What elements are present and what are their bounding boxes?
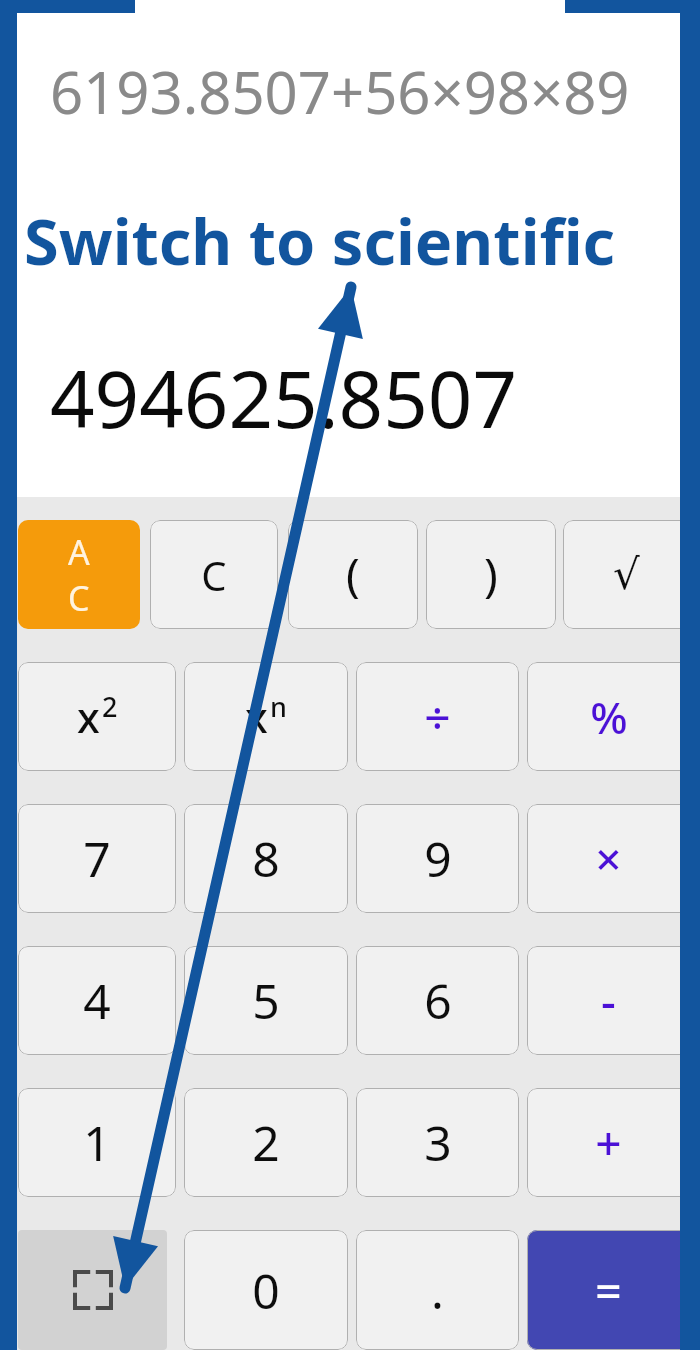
button[interactable]: ×	[527, 804, 690, 913]
staticText: 494625.8507	[50, 345, 518, 451]
button[interactable]: All clear	[18, 520, 140, 629]
staticText: =	[595, 1259, 622, 1322]
button[interactable]: x squared	[18, 662, 176, 771]
button[interactable]: C	[150, 520, 278, 629]
button[interactable]: 7	[18, 804, 176, 913]
button[interactable]: .	[356, 1230, 519, 1350]
button[interactable]: 3	[356, 1088, 519, 1197]
button[interactable]: )	[426, 520, 556, 629]
staticText: 6	[424, 968, 452, 1033]
staticText: C	[68, 575, 90, 621]
staticText: 4	[83, 968, 111, 1033]
button[interactable]: 8	[184, 804, 348, 913]
staticText: 3	[424, 1110, 452, 1175]
staticText: √	[613, 550, 640, 599]
staticText: 9	[424, 826, 452, 891]
button[interactable]: 1	[18, 1088, 176, 1197]
staticText: 8	[252, 826, 280, 891]
staticText: %	[590, 687, 628, 747]
button[interactable]: %	[527, 662, 690, 771]
staticText: 7	[83, 826, 111, 891]
button[interactable]: 4	[18, 946, 176, 1055]
button[interactable]: 0	[184, 1230, 348, 1350]
staticText: ×	[595, 827, 622, 890]
staticText: 6193.8507+56×98×89	[50, 52, 630, 131]
staticText: 5	[252, 968, 280, 1033]
staticText: A	[68, 529, 90, 575]
staticText: -	[601, 969, 616, 1032]
button[interactable]: 9	[356, 804, 519, 913]
button[interactable]: 5	[184, 946, 348, 1055]
staticText: 2	[102, 688, 118, 725]
staticText: Switch to scientific	[24, 198, 616, 284]
staticText: 2	[252, 1110, 280, 1175]
button[interactable]: (	[288, 520, 418, 629]
staticText: +	[595, 1111, 622, 1174]
staticText: x	[245, 688, 268, 745]
staticText: x	[77, 688, 100, 745]
staticText: 0	[252, 1258, 280, 1323]
button[interactable]: 6	[356, 946, 519, 1055]
button[interactable]: Expand display	[18, 1230, 167, 1350]
staticText: 1	[83, 1110, 111, 1175]
staticText: )	[484, 543, 498, 606]
button[interactable]: 2	[184, 1088, 348, 1197]
button[interactable]: √	[563, 520, 690, 629]
staticText: ÷	[424, 685, 451, 748]
button[interactable]: ÷	[356, 662, 519, 771]
button[interactable]: +	[527, 1088, 690, 1197]
staticText: n	[270, 688, 287, 725]
staticText: .	[431, 1258, 444, 1323]
button[interactable]: -	[527, 946, 690, 1055]
button[interactable]: =	[527, 1230, 690, 1350]
button[interactable]: x to the power n	[184, 662, 348, 771]
staticText: C	[201, 548, 227, 602]
staticText: (	[346, 543, 360, 606]
